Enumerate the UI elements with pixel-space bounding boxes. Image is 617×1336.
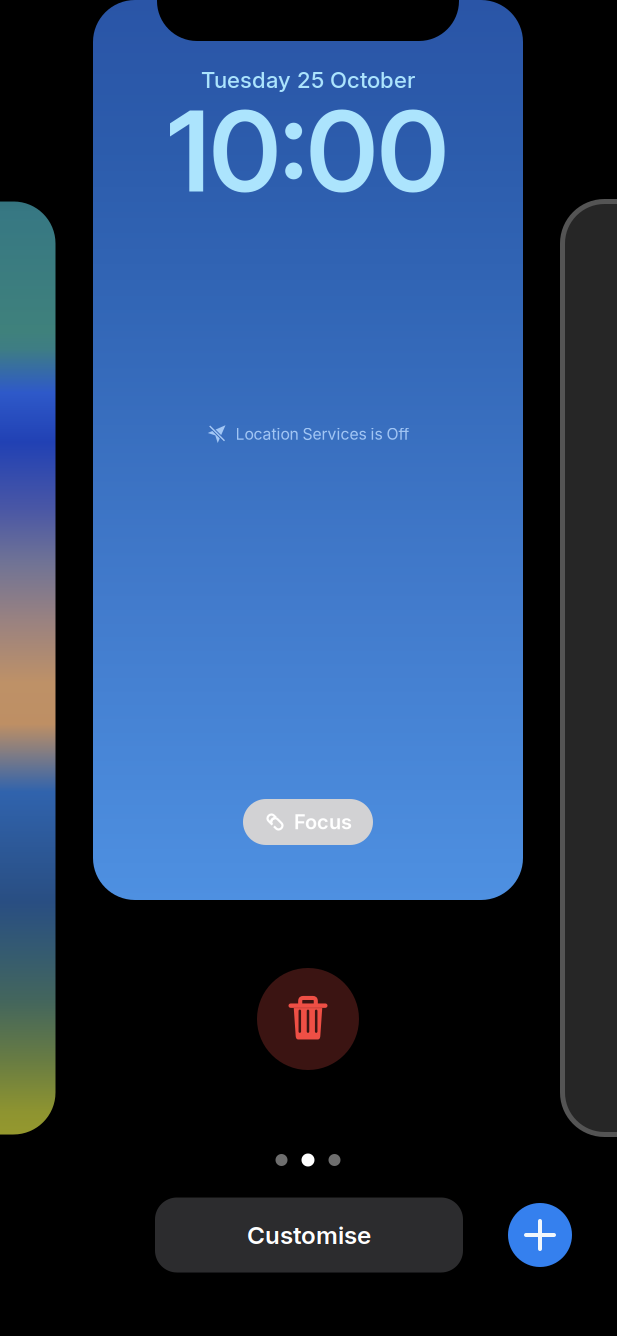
button[interactable]: Add new wallpaper — [508, 1203, 572, 1267]
staticText: Tuesday 25 October — [201, 67, 415, 93]
staticText: Location Services is Off — [235, 424, 409, 443]
button[interactable]: Customise — [155, 1197, 463, 1272]
button[interactable]: Focus — [243, 799, 373, 845]
button[interactable]: Delete wallpaper — [257, 968, 359, 1070]
staticText: Customise — [247, 1220, 371, 1250]
staticText: Focus — [294, 810, 352, 834]
staticText: 10:00 — [167, 84, 448, 218]
